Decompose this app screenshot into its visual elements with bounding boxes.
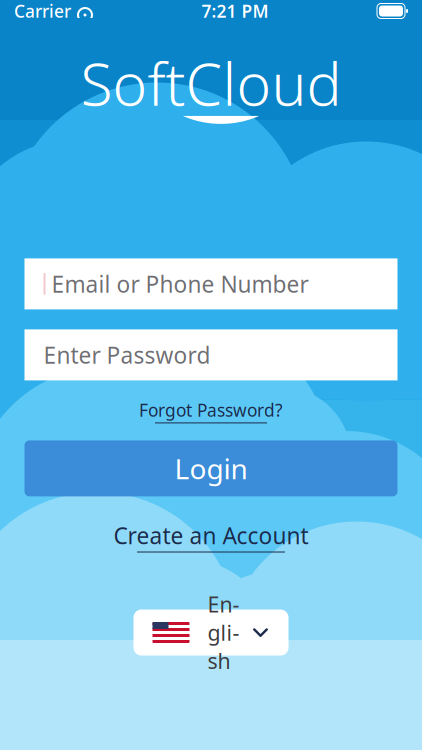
- staticText: Create an Account: [113, 520, 308, 550]
- staticText: Forgot Password?: [139, 398, 283, 421]
- button[interactable]: Login: [24, 440, 397, 496]
- staticText: English: [207, 590, 239, 675]
- staticText: Email or Phone Number: [51, 269, 308, 299]
- staticText: [71, 0, 77, 26]
- staticText: 7:21 PM: [201, 0, 268, 22]
- button[interactable]: Create an Account: [105, 516, 316, 556]
- button[interactable]: Forgot Password?: [133, 395, 289, 426]
- button[interactable]: [24, 258, 397, 309]
- staticText: Login: [174, 450, 247, 487]
- staticText: Carrier: [14, 0, 71, 22]
- staticText: SoftCloud: [80, 44, 341, 122]
- button[interactable]: [133, 609, 288, 655]
- button[interactable]: Enter Password: [24, 329, 397, 380]
- staticText: Enter Password: [43, 340, 210, 370]
